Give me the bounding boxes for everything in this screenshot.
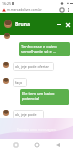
staticText: Escreva uma mensagem [17,127,56,132]
staticText: 16:25 [2,1,11,6]
button[interactable]: Tabs [58,6,65,13]
staticText: Ele tem um baixo potencial de entrada [22,91,67,103]
staticText: m.mercadolivre.com.br [7,8,42,12]
button[interactable]: ok, jeje pode ofertar [13,110,44,119]
button[interactable]: Tenho esse e outro semelhante só e ... [19,42,70,56]
staticText: ok, jeje pode ofertar [15,64,50,69]
button[interactable]: ok, jeje pode ofertar [13,62,54,71]
staticText: ok, jeje pode ofertar [15,112,42,117]
button[interactable]: Minimize [54,20,63,29]
button[interactable]: More options [65,6,72,13]
staticText: Tenho esse e outro semelhante só e ... [21,44,57,54]
button[interactable]: faço [13,78,27,87]
button[interactable]: Recent apps [10,139,21,150]
button[interactable]: Back [52,139,63,150]
button[interactable]: Home [31,139,42,150]
button[interactable]: Close [63,20,72,29]
staticText: Bruna [15,21,31,28]
staticText: faço [15,80,23,85]
button[interactable]: Ele tem um baixo potencial de entrada [20,89,69,105]
